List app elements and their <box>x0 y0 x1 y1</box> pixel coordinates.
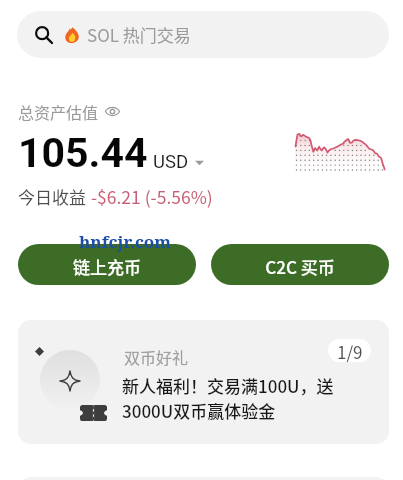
button[interactable]: 双币好礼 <box>18 320 389 444</box>
button[interactable]: USD <box>153 151 204 173</box>
staticText: 新人福利！交易满100U，送 3000U双币赢体验金 <box>122 373 334 423</box>
staticText: hnfcjr.com <box>79 230 172 253</box>
staticText: USD <box>153 151 189 173</box>
staticText: 今日收益 <box>18 184 86 209</box>
staticText: 1/9 <box>337 339 363 362</box>
button[interactable]: 链上充币 <box>18 244 196 285</box>
staticText: C2C 买币 <box>265 254 335 279</box>
staticText: -$6.21 (-5.56%) <box>91 184 213 209</box>
button[interactable]: Search <box>17 11 389 58</box>
staticText: 双币好礼 <box>124 345 189 368</box>
staticText: 105.44 <box>18 129 148 177</box>
button[interactable]: 1/9 <box>328 339 371 362</box>
staticText: 链上充币 <box>73 254 141 279</box>
staticText: 总资产估值 <box>18 100 99 123</box>
button[interactable]: C2C 买币 <box>211 244 389 285</box>
other: Search <box>35 26 52 43</box>
button[interactable]: Toggle balance visibility <box>105 104 120 119</box>
staticText: SOL 热门交易 <box>87 22 191 47</box>
